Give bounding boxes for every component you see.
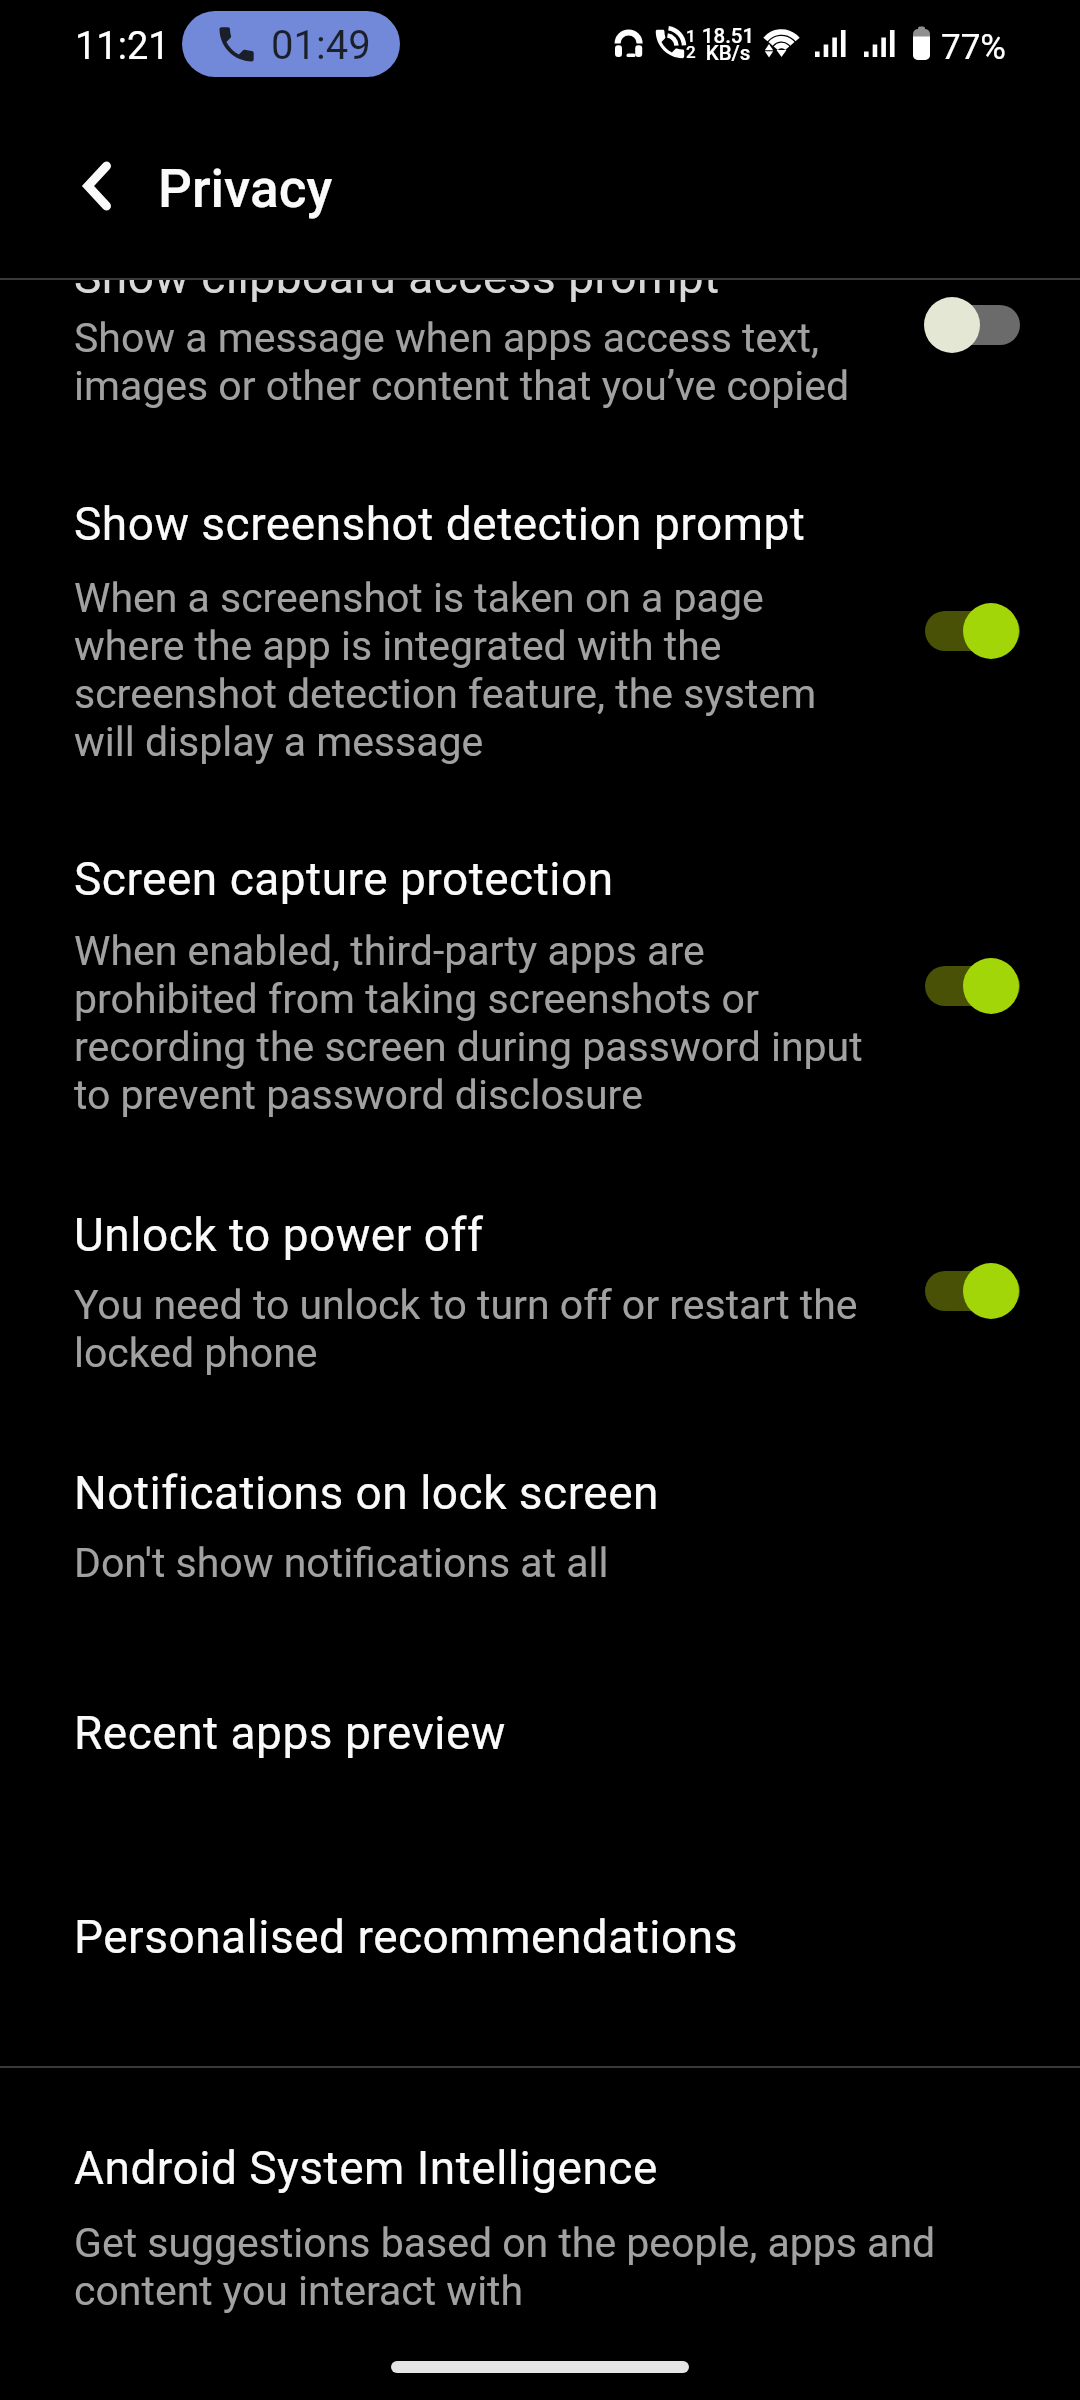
button[interactable]: 01:49 [182, 11, 400, 77]
staticText: 11:21 [75, 24, 170, 69]
staticText: Unlock to power off [74, 1208, 484, 1262]
button[interactable]: Show clipboard access prompt [0, 280, 1080, 460]
staticText: Don't show notifications at all [74, 1539, 609, 1587]
staticText: 2 [686, 42, 696, 62]
staticText: Screen capture protection [74, 852, 614, 906]
button[interactable] [55, 140, 145, 230]
button[interactable]: Android System Intelligence [0, 2110, 1080, 2330]
staticText: When a screenshot is taken on a page whe… [74, 574, 817, 766]
staticText: When enabled, third-party apps are prohi… [74, 927, 863, 1119]
staticText: 77% [941, 27, 1006, 68]
staticText: Privacy [158, 158, 333, 220]
button[interactable] [925, 966, 1020, 1006]
button[interactable]: Screen capture protection [0, 820, 1080, 1140]
staticText: Show a message when apps access text, im… [74, 314, 850, 410]
button[interactable] [925, 1271, 1020, 1311]
staticText: Get suggestions based on the people, app… [74, 2219, 936, 2315]
button[interactable]: Personalised recommendations [0, 1880, 1080, 1990]
staticText: 18.51 [700, 24, 756, 48]
staticText: Notifications on lock screen [74, 1466, 660, 1520]
button[interactable]: Recent apps preview [0, 1680, 1080, 1790]
staticText: Recent apps preview [74, 1706, 506, 1760]
button[interactable]: Show screenshot detection prompt [0, 470, 1080, 790]
staticText: Show clipboard access prompt [74, 280, 720, 304]
staticText: You need to unlock to turn off or restar… [74, 1281, 858, 1377]
button[interactable] [925, 305, 1020, 345]
staticText: Android System Intelligence [74, 2141, 658, 2195]
button[interactable]: Unlock to power off [0, 1180, 1080, 1400]
staticText: KB/s [700, 41, 756, 65]
button[interactable] [925, 611, 1020, 651]
button[interactable]: Notifications on lock screen [0, 1440, 1080, 1610]
staticText: 01:49 [271, 22, 371, 69]
staticText: Personalised recommendations [74, 1910, 738, 1964]
staticText: Show screenshot detection prompt [74, 497, 806, 551]
staticText: 1 [686, 26, 696, 46]
